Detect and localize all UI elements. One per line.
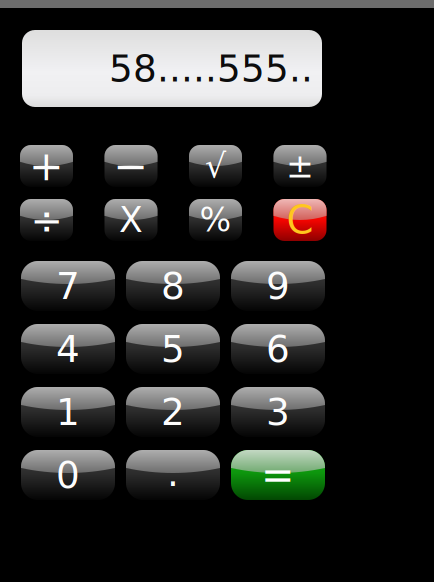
staticText: C: [286, 197, 313, 242]
button[interactable]: 5: [126, 324, 220, 374]
button[interactable]: Square root: [189, 145, 242, 187]
staticText: 7: [56, 264, 80, 308]
staticText: X: [119, 200, 143, 240]
button[interactable]: Plus or minus: [273, 145, 326, 187]
staticText: 9: [266, 264, 290, 308]
button[interactable]: 7: [21, 261, 115, 311]
staticText: +: [29, 142, 64, 190]
staticText: %: [199, 201, 231, 239]
staticText: 4: [56, 327, 80, 371]
staticText: .: [167, 451, 179, 495]
button[interactable]: 1: [21, 387, 115, 437]
staticText: 2: [161, 390, 185, 434]
staticText: 0: [56, 453, 80, 497]
staticText: =: [261, 452, 295, 498]
button[interactable]: Divide: [20, 199, 73, 241]
staticText: √: [205, 147, 226, 185]
button[interactable]: Decimal point: [126, 450, 220, 500]
button[interactable]: 6: [231, 324, 325, 374]
staticText: ÷: [30, 197, 62, 242]
button[interactable]: Plus: [20, 145, 73, 187]
staticText: ±: [286, 147, 314, 185]
button[interactable]: 8: [126, 261, 220, 311]
button[interactable]: 2: [126, 387, 220, 437]
button[interactable]: 9: [231, 261, 325, 311]
staticText: −: [113, 142, 148, 190]
staticText: 58.....555..: [109, 47, 313, 90]
button[interactable]: Equals: [231, 450, 325, 500]
staticText: 3: [266, 390, 290, 434]
button[interactable]: 4: [21, 324, 115, 374]
button[interactable]: Multiply: [104, 199, 157, 241]
button[interactable]: 3: [231, 387, 325, 437]
button[interactable]: Clear: [273, 199, 326, 241]
button[interactable]: 0: [21, 450, 115, 500]
button[interactable]: Percent: [189, 199, 242, 241]
staticText: 6: [266, 327, 290, 371]
staticText: 8: [161, 264, 185, 308]
staticText: 5: [161, 327, 185, 371]
button[interactable]: Minus: [104, 145, 157, 187]
staticText: 1: [56, 390, 80, 434]
